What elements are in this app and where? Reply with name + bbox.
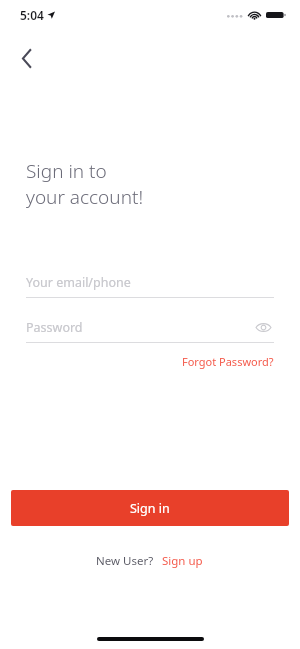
staticText: New User?	[96, 553, 154, 569]
button[interactable]: Show password	[252, 316, 274, 338]
staticText: Your email/phone	[26, 274, 131, 291]
staticText: 5:04	[20, 7, 44, 23]
button[interactable]: Password	[26, 314, 274, 343]
button[interactable]: Your email/phone	[26, 269, 274, 298]
staticText: Forgot Password?	[182, 354, 274, 369]
staticText: your account!	[26, 184, 144, 210]
staticText: Sign in	[130, 500, 170, 517]
staticText: Sign up	[162, 553, 203, 569]
button[interactable]: Back	[8, 40, 44, 76]
button[interactable]: Sign up	[160, 550, 205, 572]
staticText: Password	[26, 319, 83, 336]
button[interactable]: Sign in	[11, 490, 289, 526]
staticText: Sign in to	[26, 158, 107, 184]
button[interactable]: Forgot Password?	[180, 351, 276, 372]
